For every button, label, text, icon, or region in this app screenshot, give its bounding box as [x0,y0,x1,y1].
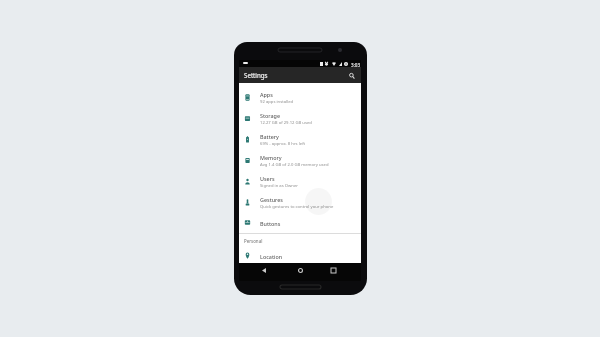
button[interactable]: Location [239,246,361,265]
staticText: Settings [244,71,268,79]
staticText: Battery [260,133,279,140]
staticText: Location [260,253,283,260]
staticText: Apps [260,91,273,98]
staticText: Personal [244,238,263,244]
staticText: Quick gestures to control your phone [260,204,334,210]
button[interactable]: Gestures [239,191,361,212]
staticText: 3:03 [351,62,361,68]
staticText: 92 apps installed [260,99,294,105]
staticText: 12.27 GB of 29.12 GB used [260,120,312,126]
button[interactable]: Back [258,265,269,276]
button[interactable]: Battery [239,128,361,149]
button[interactable]: Home [295,265,306,276]
staticText: Avg 1.4 GB of 2.0 GB memory used [260,162,329,168]
button[interactable]: Recent apps [328,265,339,276]
button[interactable]: Storage [239,107,361,128]
button[interactable]: Memory [239,149,361,170]
button[interactable]: Users [239,170,361,191]
button[interactable]: Apps [239,86,361,107]
staticText: Memory [260,154,282,161]
staticText: Signed in as Owner [260,183,299,189]
staticText: Buttons [260,220,281,227]
button[interactable]: Search [346,70,357,81]
staticText: Gestures [260,196,283,203]
staticText: Users [260,175,275,182]
staticText: Storage [260,112,281,119]
button[interactable]: Buttons [239,212,361,233]
staticText: 69% - approx. 8 hrs left [260,141,306,147]
